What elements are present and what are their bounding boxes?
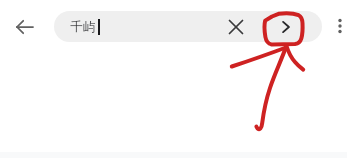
button[interactable]: More options (327, 13, 347, 39)
button[interactable]: Search (270, 11, 302, 43)
staticText: 千屿 (70, 19, 95, 35)
button[interactable]: Back (9, 11, 41, 43)
button[interactable]: Search field (54, 11, 322, 42)
button[interactable]: Clear query (220, 11, 252, 43)
